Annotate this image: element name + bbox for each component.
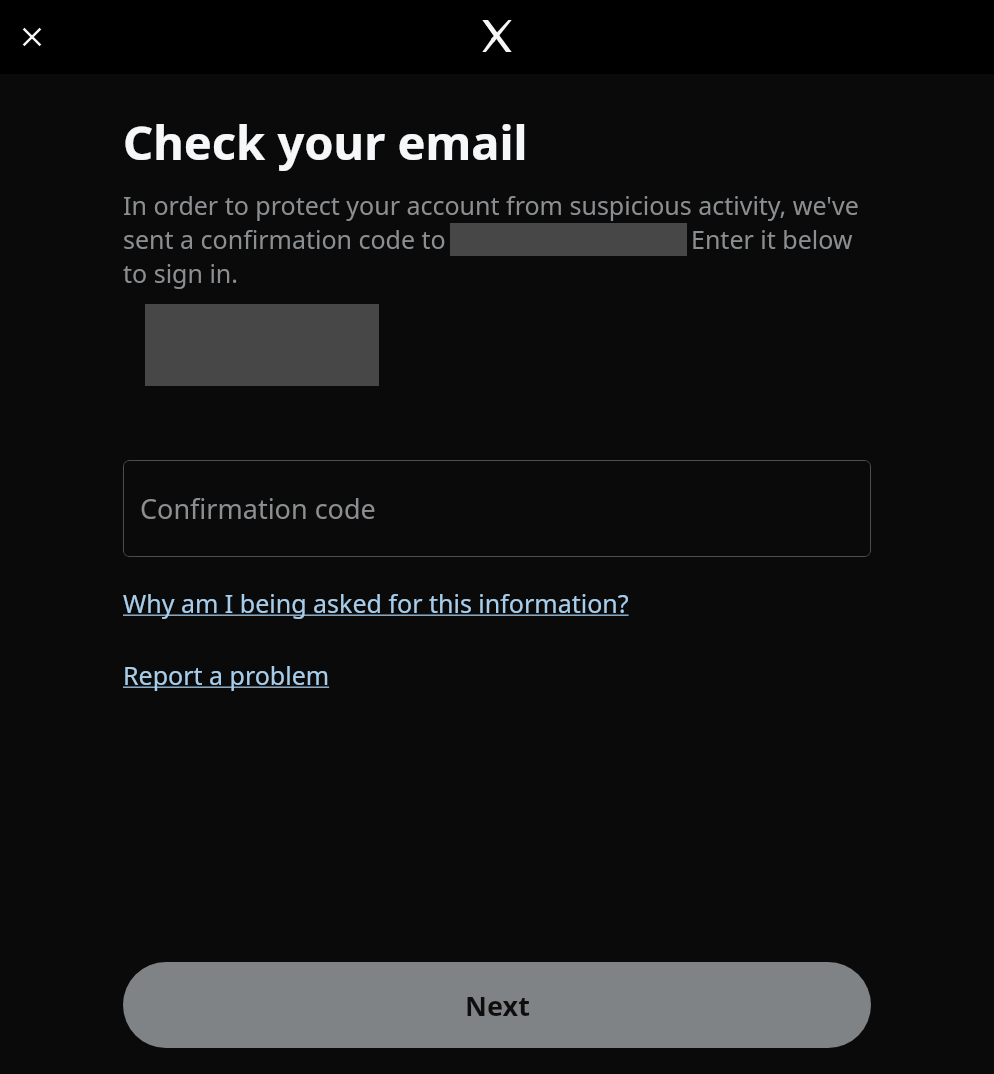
staticText: In order to protect your account from su… [123, 188, 859, 222]
button[interactable]: Next [123, 962, 871, 1048]
staticText: sent a confirmation code to [123, 222, 446, 256]
button[interactable]: Report a problem [123, 658, 330, 692]
staticText: Next [465, 987, 530, 1024]
staticText: Report a problem [123, 658, 330, 692]
button[interactable]: Why am I being asked for this informatio… [123, 586, 629, 620]
staticText: Confirmation code [140, 490, 376, 527]
button[interactable]: Close [10, 15, 54, 59]
staticText: Why am I being asked for this informatio… [123, 586, 629, 620]
staticText: to sign in. [123, 256, 239, 290]
staticText: Check your email [123, 110, 528, 174]
button[interactable]: Confirmation code [123, 460, 871, 557]
staticText: Enter it below [691, 222, 853, 256]
